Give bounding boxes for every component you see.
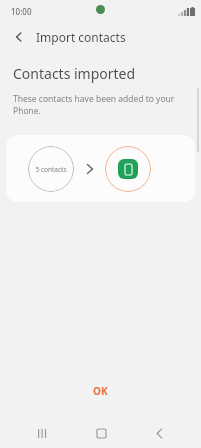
- staticText: 10:00: [11, 6, 32, 17]
- staticText: Contacts imported: [13, 64, 136, 83]
- button[interactable]: Back: [6, 24, 32, 50]
- staticText: 5 contacts: [35, 165, 67, 174]
- staticText: OK: [93, 384, 108, 398]
- button[interactable]: OK: [69, 378, 132, 404]
- staticText: These contacts have been added to your P…: [13, 93, 179, 117]
- button[interactable]: Back: [142, 418, 176, 448]
- staticText: Import contacts: [36, 29, 126, 45]
- button[interactable]: Home: [84, 418, 118, 448]
- button[interactable]: 5 contacts: [6, 135, 195, 202]
- button[interactable]: Recent apps: [25, 418, 59, 448]
